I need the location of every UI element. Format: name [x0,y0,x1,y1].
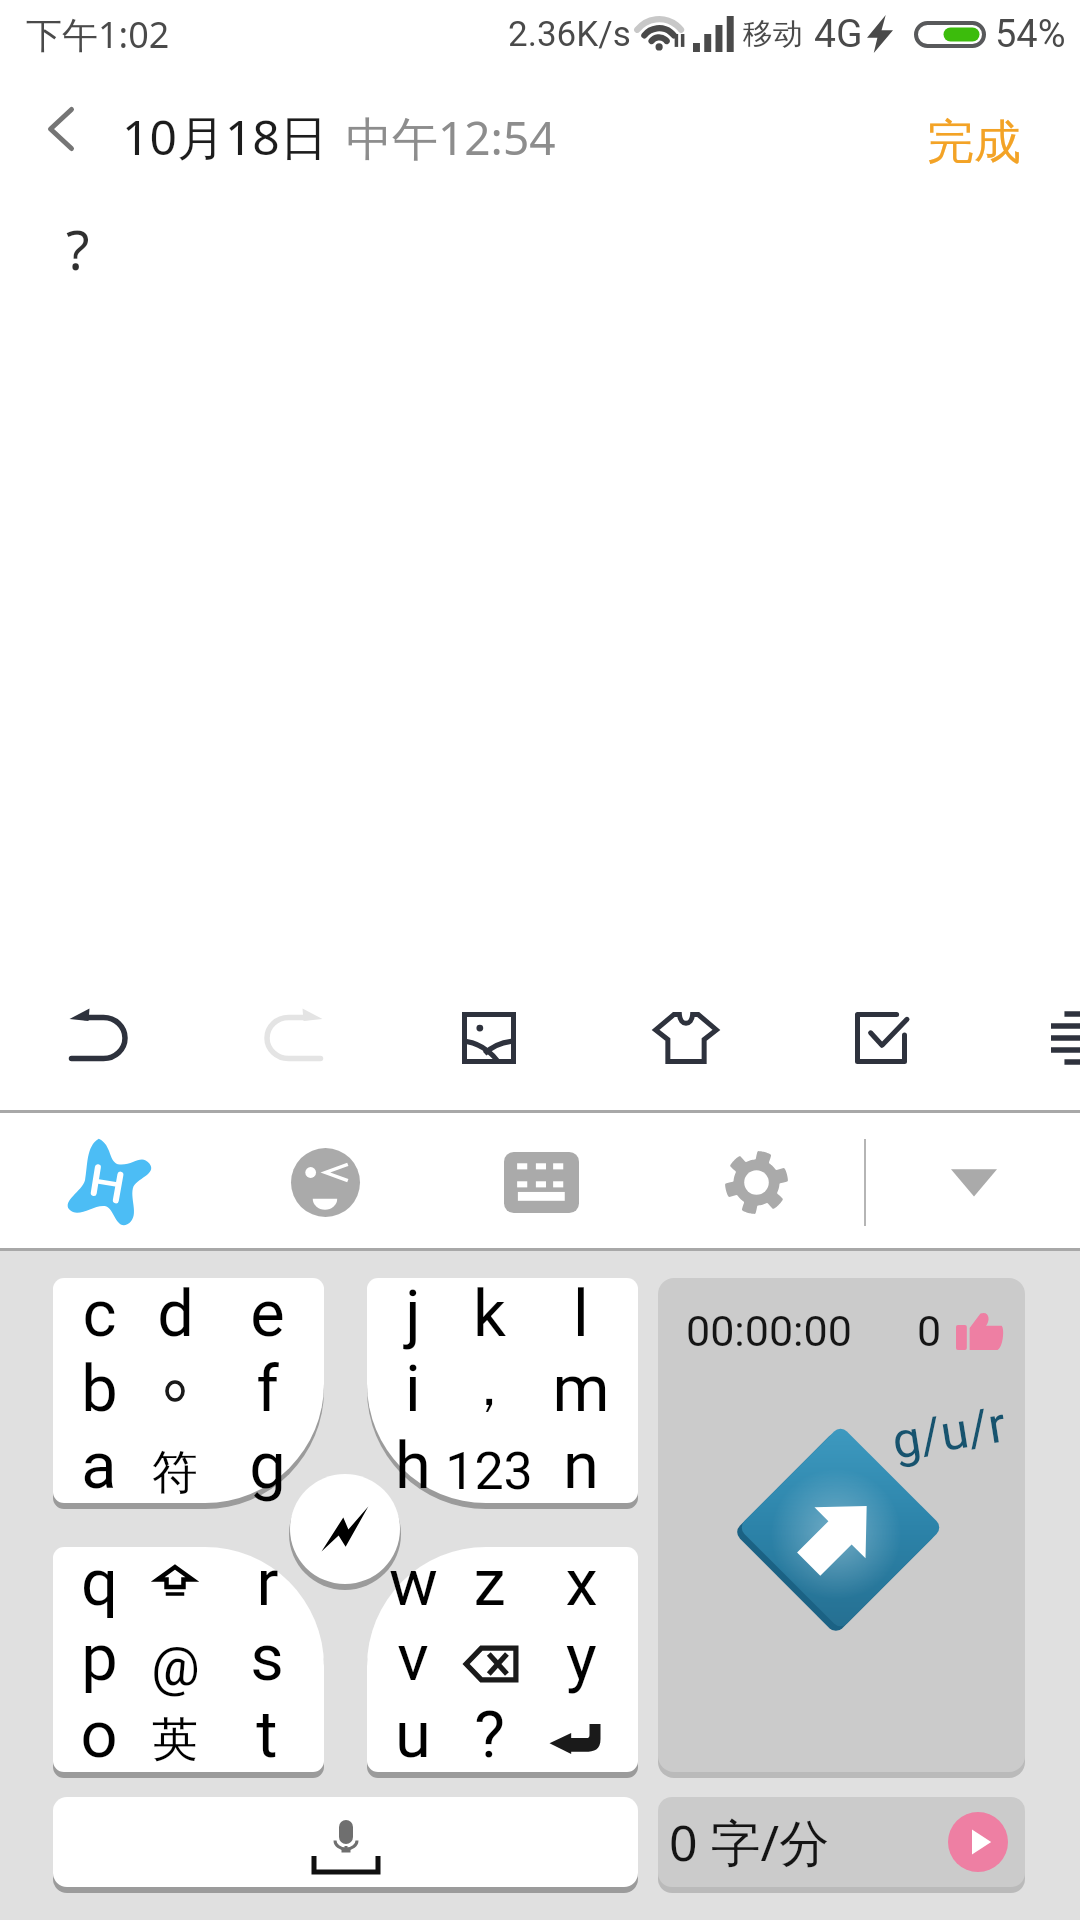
button[interactable]: Style [630,982,742,1094]
button[interactable]: x [535,1545,627,1621]
button[interactable]: 123 [443,1428,535,1504]
button[interactable]: w [367,1545,459,1621]
staticText: h [395,1428,431,1504]
button[interactable]: r [221,1545,313,1621]
button[interactable]: j [367,1276,459,1352]
button[interactable]: Typing speed [658,1797,1025,1893]
staticText: p [81,1620,118,1696]
button[interactable]: Handwriting input [52,1126,164,1238]
button[interactable]: l [535,1276,627,1352]
button[interactable]: Back [11,79,111,179]
button[interactable]: i [367,1351,459,1427]
button[interactable]: q [53,1545,145,1621]
staticText: k [473,1276,506,1352]
button[interactable]: 完成 [903,101,1045,184]
button[interactable]: Insert image [433,982,545,1094]
button[interactable]: a [53,1428,145,1504]
staticText: 0 [917,1306,942,1356]
staticText: 123 [445,1441,533,1502]
button[interactable]: v [367,1620,459,1696]
staticText: ? [66,212,90,286]
button[interactable]: h [367,1428,459,1504]
staticText: y [566,1620,597,1696]
staticText: t [256,1697,278,1773]
button[interactable]: g [221,1428,313,1504]
button[interactable]: Redo [238,982,350,1094]
staticText: o [80,1697,118,1773]
staticText: i [405,1351,421,1427]
staticText: g [249,1428,286,1504]
staticText: 中午12:54 [346,106,556,169]
button[interactable]: Hide keyboard [918,1126,1030,1238]
button[interactable]: Settings [700,1126,812,1238]
button[interactable]: m [535,1351,627,1427]
button[interactable]: y [535,1620,627,1696]
staticText: b [81,1351,118,1427]
staticText: z [473,1545,506,1621]
staticText: 2.36K/s [508,14,631,55]
staticText: l [573,1276,589,1352]
staticText: ， [462,1353,516,1421]
staticText: 英 [152,1711,198,1769]
staticText: q [81,1545,118,1621]
staticText: s [250,1620,284,1696]
staticText: x [565,1545,598,1621]
button[interactable]: Checklist [825,982,937,1094]
button[interactable]: z [443,1545,535,1621]
staticText: 54% [995,12,1066,57]
button[interactable] [443,1620,535,1696]
staticText: n [563,1428,599,1504]
staticText: g/u/r [888,1395,1010,1471]
staticText: f [256,1351,279,1427]
button[interactable]: Align [1021,982,1080,1094]
button[interactable] [129,1545,221,1621]
button[interactable] [535,1697,627,1773]
button[interactable]: k [443,1276,535,1352]
staticText: @ [151,1635,200,1698]
staticText: 00:00:00 [686,1306,852,1356]
staticText: ? [474,1697,505,1773]
staticText: m [552,1351,610,1427]
button[interactable]: u [367,1697,459,1773]
button[interactable]: Switch input mode [288,1472,402,1586]
staticText: r [256,1545,279,1621]
staticText: 4G [814,11,863,57]
button[interactable]: Undo [42,982,154,1094]
button[interactable]: d [129,1276,221,1352]
staticText: d [157,1276,194,1352]
staticText: a [81,1428,117,1504]
button[interactable]: ? [443,1697,535,1773]
button[interactable] [129,1351,221,1427]
staticText: 符 [152,1444,198,1502]
button[interactable]: c [53,1276,145,1352]
button[interactable]: f [221,1351,313,1427]
button[interactable]: Keyboard layout [485,1126,597,1238]
staticText: v [397,1620,429,1696]
staticText: e [250,1276,285,1352]
staticText: 10月18日 [122,104,328,170]
button[interactable]: p [53,1620,145,1696]
button[interactable]: Emoji [269,1126,381,1238]
button[interactable]: 英 [129,1697,221,1773]
button[interactable]: e [221,1276,313,1352]
button[interactable]: t [221,1697,313,1773]
staticText: 移动 [743,15,803,53]
button[interactable]: 符 [129,1428,221,1504]
button[interactable]: b [53,1351,145,1427]
staticText: u [395,1697,431,1773]
staticText: c [82,1276,117,1352]
button[interactable]: ， [443,1351,535,1427]
staticText: 下午1:02 [26,10,170,59]
button[interactable]: n [535,1428,627,1504]
button[interactable]: o [53,1697,145,1773]
staticText: 完成 [927,113,1021,172]
staticText: w [389,1545,438,1621]
button[interactable]: @ [129,1620,221,1696]
button[interactable]: Space [53,1797,638,1893]
button[interactable]: s [221,1620,313,1696]
staticText: j [405,1276,421,1352]
staticText: 0 字/分 [669,1808,830,1876]
